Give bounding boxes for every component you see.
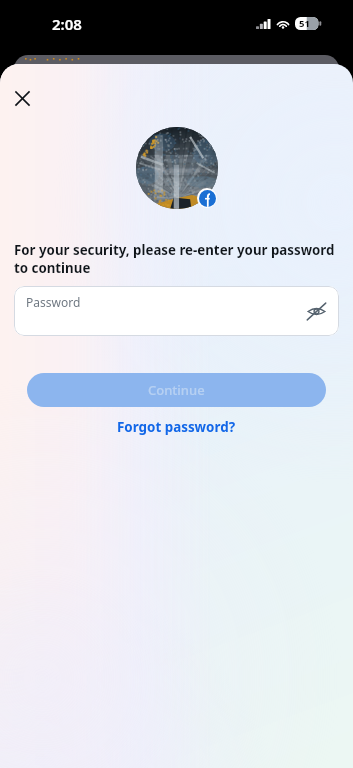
button[interactable]: Password — [14, 286, 339, 336]
staticText: 2:08 — [52, 14, 82, 34]
staticText: 51 — [299, 17, 310, 30]
staticText: Continue — [148, 381, 205, 399]
staticText: Forgot password? — [117, 418, 236, 436]
staticText: For your security, please re-enter your … — [14, 241, 345, 277]
button[interactable]: Show password — [300, 295, 332, 327]
staticText: Password — [26, 294, 81, 310]
button[interactable]: Close — [6, 82, 39, 115]
button[interactable]: Forgot password? — [109, 416, 244, 438]
button[interactable]: Continue — [27, 373, 326, 407]
